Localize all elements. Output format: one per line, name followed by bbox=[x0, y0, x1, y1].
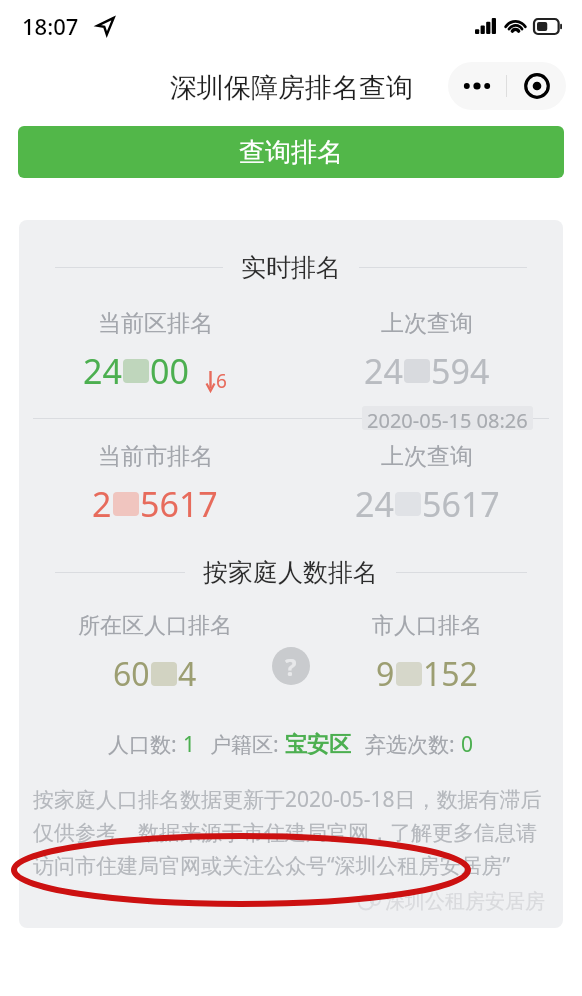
staticText: 24 bbox=[364, 348, 403, 394]
staticText: 2020-05-15 08:26 bbox=[367, 407, 528, 429]
button[interactable]: More bbox=[448, 62, 506, 110]
staticText: 4 bbox=[178, 652, 197, 696]
staticText: 1 bbox=[183, 730, 196, 759]
staticText: ? bbox=[285, 650, 297, 683]
staticText: 6 bbox=[216, 368, 227, 394]
staticText: 60 bbox=[113, 652, 150, 696]
staticText: 人口数: bbox=[108, 730, 183, 759]
staticText: 按家庭人口排名数据更新于2020-05-18日，数据有滞后仅供参考。数据来源于市… bbox=[33, 785, 549, 879]
staticText: 5617 bbox=[422, 481, 500, 527]
staticText: 市人口排名 bbox=[372, 612, 482, 640]
staticText: 152 bbox=[423, 652, 478, 696]
staticText: 所在区人口排名 bbox=[78, 612, 232, 640]
staticText: 深圳保障房排名查询 bbox=[170, 71, 413, 105]
staticText: 24 bbox=[355, 481, 394, 527]
staticText: 24 bbox=[83, 348, 122, 394]
staticText: 按家庭人数排名 bbox=[203, 557, 378, 588]
staticText: 0 bbox=[461, 730, 474, 759]
staticText: 18:07 bbox=[22, 11, 79, 41]
staticText: 深圳公租房安居房 bbox=[385, 889, 545, 914]
staticText: 9 bbox=[376, 652, 395, 696]
staticText: 00 bbox=[150, 348, 189, 394]
staticText: 户籍区: bbox=[210, 730, 285, 759]
staticText: 5617 bbox=[140, 481, 218, 527]
staticText: 宝安区 bbox=[285, 731, 351, 759]
staticText: 弃选次数: bbox=[365, 730, 461, 759]
button[interactable]: 查询排名 bbox=[18, 126, 564, 178]
staticText: 当前市排名 bbox=[98, 442, 213, 471]
button[interactable]: Help bbox=[272, 647, 310, 685]
staticText: 实时排名 bbox=[241, 252, 341, 283]
staticText: 上次查询 bbox=[381, 309, 473, 338]
staticText: 2 bbox=[92, 481, 112, 527]
button[interactable]: Close mini program bbox=[507, 62, 566, 110]
staticText: 594 bbox=[431, 348, 490, 394]
staticText: 上次查询 bbox=[381, 442, 473, 471]
staticText: 当前区排名 bbox=[98, 309, 213, 338]
staticText: 查询排名 bbox=[239, 136, 343, 169]
